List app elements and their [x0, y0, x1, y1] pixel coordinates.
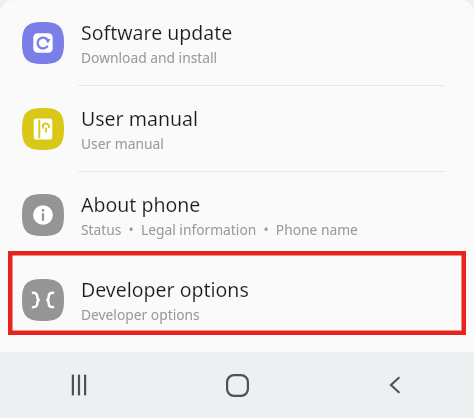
button[interactable]: Developer options — [0, 257, 474, 342]
staticText: Developer options — [81, 305, 200, 324]
button[interactable]: Recents — [0, 352, 158, 418]
staticText: Download and install — [81, 48, 218, 67]
staticText: Status • Legal information • Phone name — [81, 220, 358, 239]
button[interactable]: Software update — [0, 0, 474, 85]
button[interactable]: User manual — [0, 86, 474, 171]
button[interactable]: Home — [158, 352, 316, 418]
staticText: Developer options — [81, 276, 249, 303]
button[interactable]: About phone — [0, 172, 474, 257]
staticText: About phone — [81, 191, 201, 218]
staticText: Software update — [81, 19, 233, 46]
staticText: User manual — [81, 105, 198, 132]
staticText: User manual — [81, 134, 164, 153]
button[interactable]: Back — [316, 352, 474, 418]
